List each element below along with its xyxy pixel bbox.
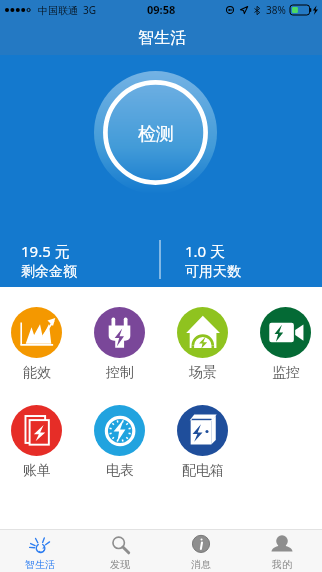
- staticText: 场景: [189, 364, 217, 382]
- button[interactable]: 检测: [94, 71, 217, 194]
- staticText: 中国联通: [38, 4, 78, 17]
- button[interactable]: 配电箱: [177, 405, 228, 480]
- button[interactable]: 智生活: [0, 530, 80, 572]
- button[interactable]: 能效: [11, 307, 62, 382]
- button[interactable]: 监控: [260, 307, 311, 382]
- button[interactable]: 账单: [11, 405, 62, 480]
- button[interactable]: 控制: [94, 307, 145, 382]
- button[interactable]: 消息: [160, 530, 241, 572]
- button[interactable]: 电表: [94, 405, 145, 480]
- staticText: 账单: [23, 462, 51, 480]
- staticText: 能效: [23, 364, 51, 382]
- button[interactable]: 场景: [177, 307, 228, 382]
- staticText: 09:58: [147, 2, 176, 17]
- staticText: 电表: [106, 462, 134, 480]
- staticText: 发现: [110, 558, 130, 571]
- staticText: 控制: [106, 364, 134, 382]
- staticText: 配电箱: [182, 462, 224, 480]
- staticText: 1.0 天: [185, 241, 226, 261]
- staticText: 3G: [83, 3, 96, 17]
- staticText: 检测: [138, 123, 174, 146]
- staticText: 消息: [191, 558, 211, 571]
- staticText: 剩余金额: [21, 263, 77, 281]
- staticText: 智生活: [138, 28, 186, 48]
- staticText: 可用天数: [185, 263, 241, 281]
- staticText: 19.5 元: [21, 241, 70, 261]
- staticText: 我的: [272, 558, 292, 571]
- staticText: 智生活: [25, 558, 55, 571]
- staticText: 38%: [266, 3, 286, 17]
- button[interactable]: 我的: [241, 530, 322, 572]
- button[interactable]: 发现: [80, 530, 160, 572]
- staticText: 监控: [272, 364, 300, 382]
